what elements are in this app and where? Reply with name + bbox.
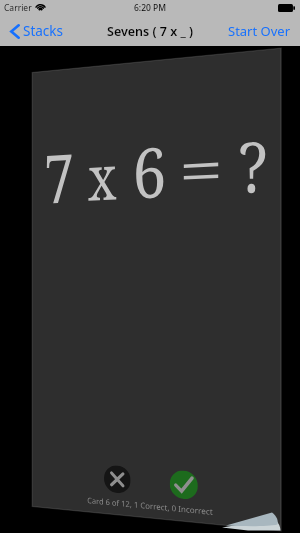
staticText: ? <box>238 117 268 213</box>
staticText: 6:20 PM <box>134 2 167 14</box>
button[interactable]: Start Over <box>220 16 300 46</box>
staticText: 6 <box>132 123 167 218</box>
button[interactable]: 7 <box>32 48 281 531</box>
staticText: Stacks <box>23 22 64 40</box>
staticText: Card 6 of 12, 1 Correct, 0 Incorrect <box>87 494 213 517</box>
staticText: Carrier <box>4 2 32 14</box>
button[interactable]: Stacks <box>0 18 70 44</box>
staticText: = <box>179 127 225 210</box>
button[interactable]: Correct <box>170 469 198 500</box>
staticText: x <box>88 133 117 218</box>
staticText: 7 <box>44 130 75 223</box>
staticText: Sevens ( 7 x _ ) <box>107 23 194 40</box>
button[interactable]: Incorrect <box>104 464 131 494</box>
